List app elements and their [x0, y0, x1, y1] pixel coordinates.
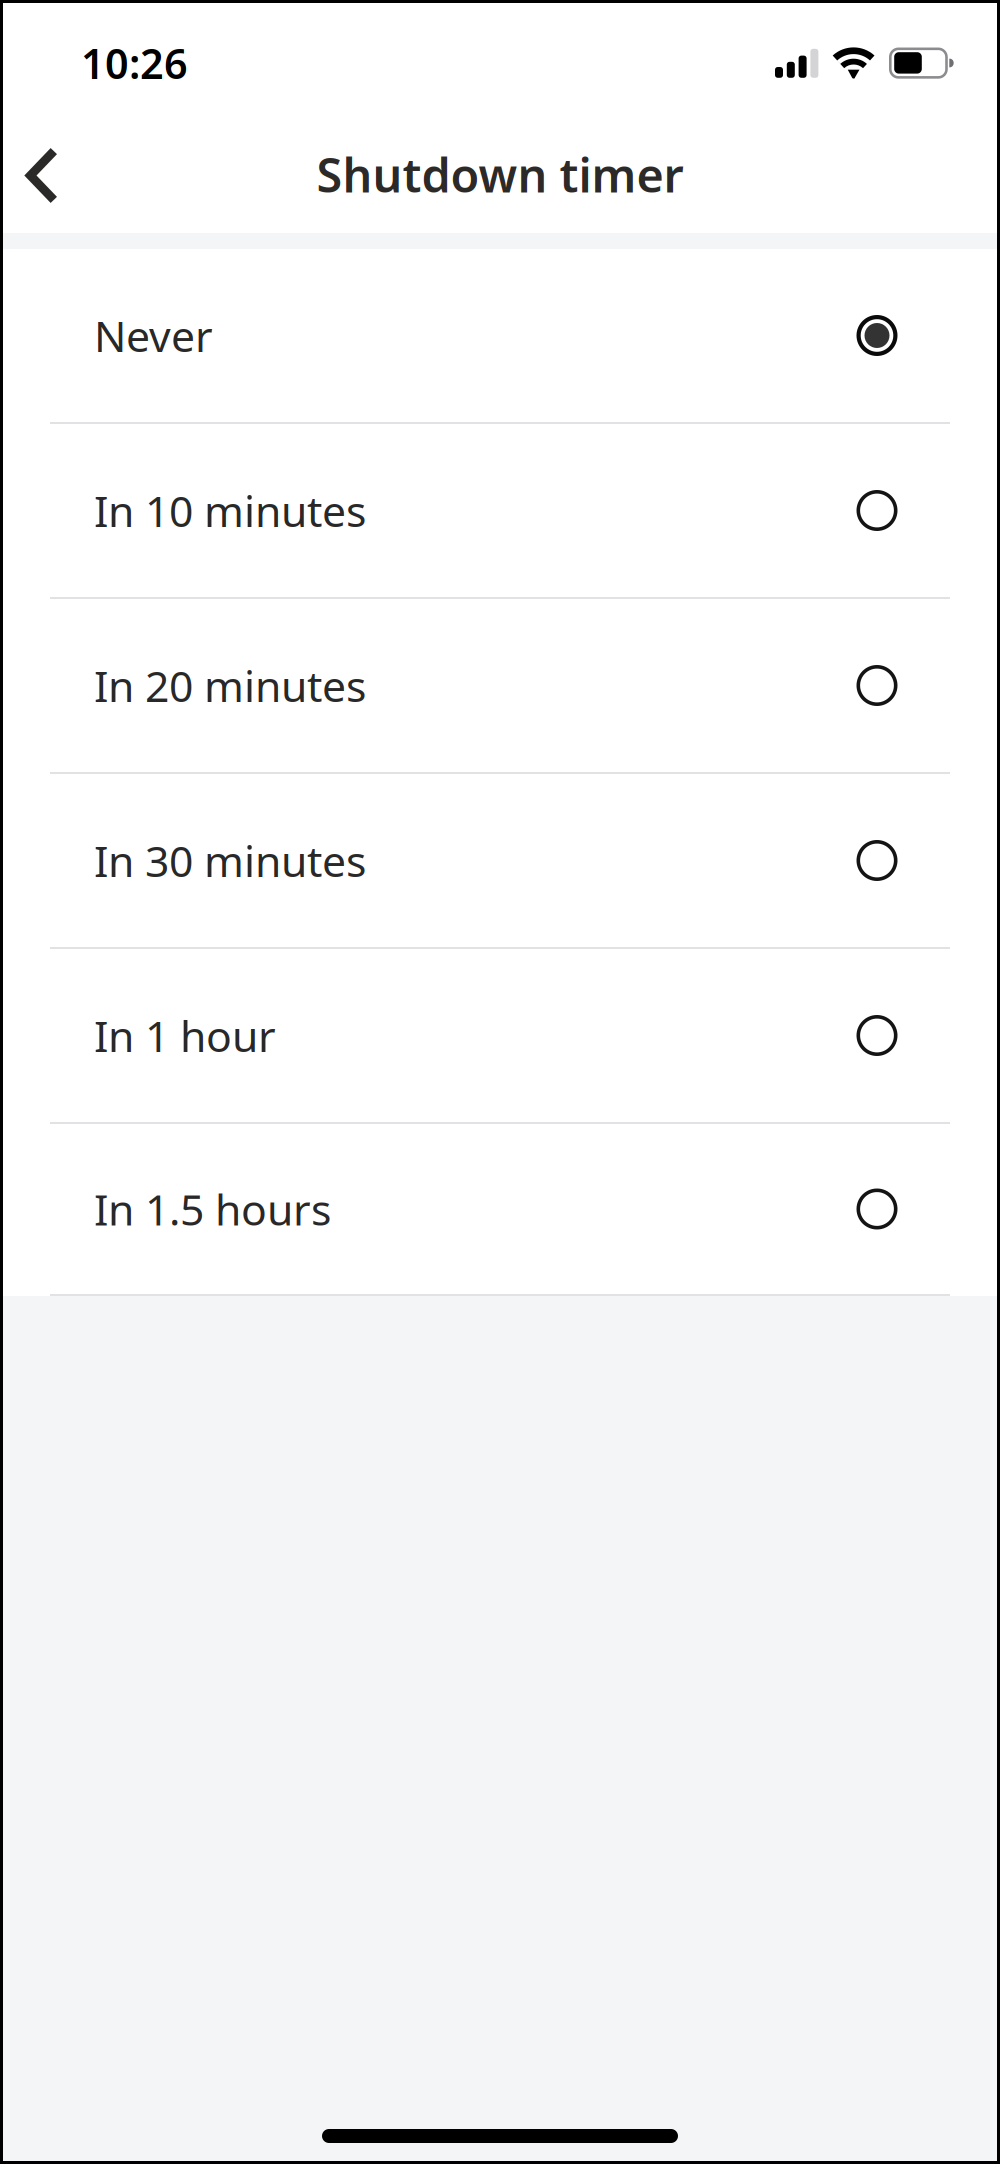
staticText: In 10 minutes	[94, 482, 366, 539]
button[interactable]: Back	[0, 131, 86, 219]
staticText: 10:26	[81, 36, 188, 90]
button[interactable]: In 30 minutes	[0, 774, 1000, 947]
button[interactable]: In 20 minutes	[0, 599, 1000, 772]
staticText: In 1 hour	[94, 1007, 276, 1064]
staticText: In 30 minutes	[94, 832, 366, 889]
button[interactable]: In 10 minutes	[0, 424, 1000, 597]
button[interactable]: In 1.5 hours	[0, 1124, 1000, 1294]
button[interactable]: In 1 hour	[0, 949, 1000, 1122]
button[interactable]: Never	[0, 249, 1000, 422]
staticText: Never	[94, 307, 213, 364]
staticText: In 1.5 hours	[94, 1181, 331, 1237]
staticText: Shutdown timer	[316, 143, 683, 205]
staticText: In 20 minutes	[94, 657, 366, 714]
